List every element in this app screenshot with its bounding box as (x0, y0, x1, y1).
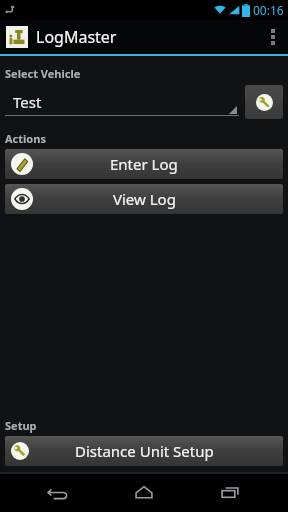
button[interactable]: Test (5, 89, 239, 116)
staticText: 00:16 (253, 2, 284, 18)
staticText: Enter Log (110, 154, 178, 174)
button[interactable]: Back (30, 472, 86, 512)
staticText: View Log (113, 189, 176, 209)
button[interactable]: More options (258, 20, 288, 54)
staticText: Distance Unit Setup (75, 441, 214, 461)
staticText: Test (13, 92, 42, 112)
button[interactable]: Distance Unit Setup (5, 436, 283, 466)
staticText: Setup (5, 418, 37, 433)
button[interactable]: Recents (202, 472, 258, 512)
staticText: LogMaster (36, 26, 117, 48)
button[interactable]: Enter Log (5, 149, 283, 179)
button[interactable]: View Log (5, 184, 283, 214)
button[interactable]: Home (116, 472, 172, 512)
staticText: Actions (5, 131, 46, 146)
button[interactable]: Vehicle setup (245, 85, 283, 119)
staticText: Select Vehicle (5, 66, 81, 81)
